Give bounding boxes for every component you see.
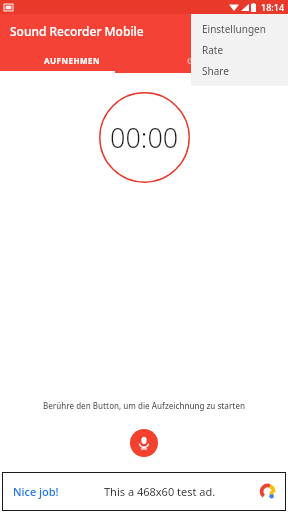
button[interactable]: Nice job!: [2, 472, 286, 511]
staticText: This a 468x60 test ad.: [104, 484, 216, 499]
staticText: Share: [202, 64, 229, 78]
staticText: Sound Recorder Mobile: [10, 23, 144, 39]
staticText: Berühre den Button, um die Aufzeichnung …: [0, 400, 288, 411]
staticText: GESPEICHERT: [187, 55, 246, 66]
staticText: 18:14: [261, 1, 285, 13]
button[interactable]: Aufnahme starten: [130, 429, 158, 457]
button[interactable]: AUFNEHMEN: [0, 48, 144, 73]
staticText: AUFNEHMEN: [44, 55, 101, 66]
staticText: Nice job!: [13, 484, 59, 499]
button[interactable]: Share: [191, 60, 288, 81]
staticText: Rate: [202, 43, 224, 57]
button[interactable]: GESPEICHERT: [144, 48, 288, 73]
button[interactable]: Einstellungen: [191, 18, 288, 39]
staticText: Einstellungen: [202, 22, 266, 36]
staticText: 00:00: [110, 119, 179, 156]
button[interactable]: Rate: [191, 39, 288, 60]
